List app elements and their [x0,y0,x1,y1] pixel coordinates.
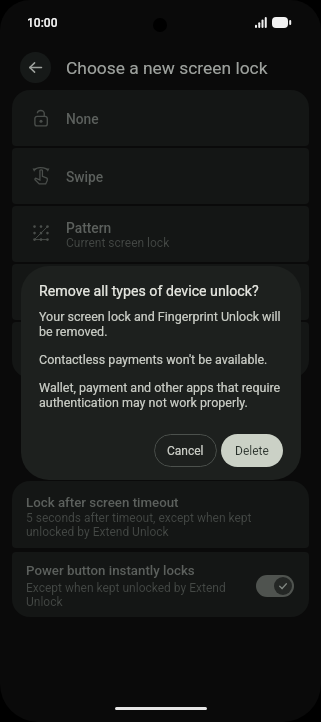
button[interactable]: Delete [221,434,283,467]
button[interactable]: Password [12,322,309,378]
button[interactable]: PIN [12,264,309,320]
button[interactable]: Pattern [12,206,309,262]
button[interactable]: Cancel [154,434,217,467]
staticText: Delete [235,444,269,458]
button[interactable]: None [12,90,309,146]
staticText: 5 seconds after timeout, except when kep… [26,511,258,539]
button[interactable]: Lock after screen timeout [12,481,309,548]
staticText: Contactless payments won't be available. [39,352,268,367]
staticText: Swipe [66,169,104,185]
button[interactable]: Swipe [12,148,309,204]
staticText: Password [66,343,127,359]
staticText: 10:00 [27,16,58,30]
staticText: Power button instantly locks [26,563,195,579]
button[interactable]: Power button instantly locks [256,575,294,597]
staticText: Remove all types of device unlock? [39,281,259,300]
staticText: Pattern [66,220,112,236]
staticText: Cancel [167,444,204,458]
staticText: PIN [66,285,89,301]
button[interactable]: Back [20,52,51,83]
staticText: Current screen lock [66,236,170,250]
staticText: Except when kept unlocked by Extend Unlo… [26,581,236,609]
staticText: None [66,111,99,127]
button[interactable]: Power button instantly locks [12,552,309,617]
staticText: Your screen lock and Fingerprint Unlock … [39,309,285,339]
staticText: Lock after screen timeout [26,495,179,511]
staticText: Wallet, payment and other apps that requ… [39,380,285,410]
staticText: Choose a new screen lock [66,58,268,78]
